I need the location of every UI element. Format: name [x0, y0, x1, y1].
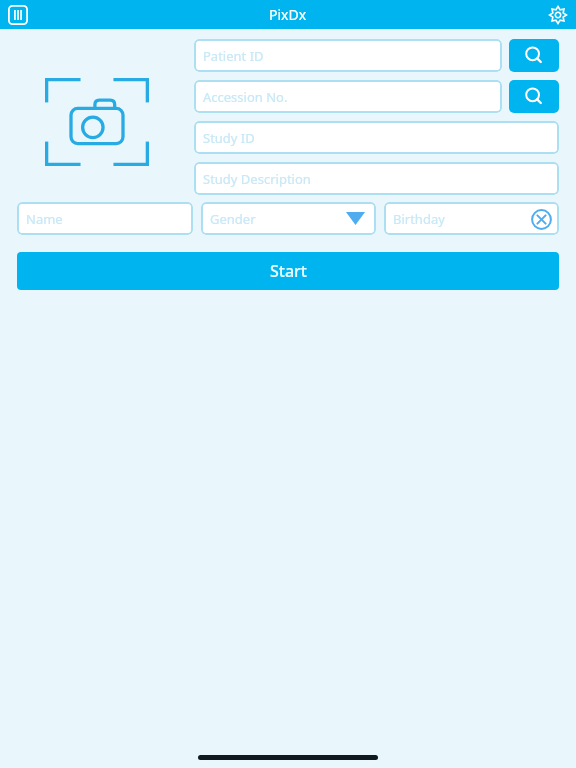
button[interactable]: Search — [509, 39, 559, 72]
button[interactable]: Study ID — [194, 121, 559, 154]
button[interactable]: Name — [17, 202, 193, 235]
staticText: Name — [26, 210, 63, 228]
staticText: Study ID — [203, 129, 255, 147]
button[interactable]: Clear birthday — [529, 207, 553, 231]
button[interactable]: Settings — [545, 2, 571, 28]
button[interactable]: Study Description — [194, 162, 559, 195]
button[interactable]: Scan barcode — [5, 2, 31, 28]
button[interactable]: Accession No. — [194, 80, 502, 113]
button[interactable]: Patient ID — [194, 39, 502, 72]
button[interactable]: Search — [509, 80, 559, 113]
button[interactable]: Gender — [201, 202, 376, 235]
button[interactable]: Scan with camera — [45, 78, 149, 166]
staticText: Accession No. — [203, 88, 288, 106]
button[interactable]: Birthday — [384, 202, 559, 235]
staticText: Start — [270, 260, 307, 282]
staticText: Birthday — [393, 210, 445, 228]
staticText: Study Description — [203, 170, 311, 188]
staticText: PixDx — [269, 5, 307, 24]
staticText: Gender — [210, 210, 256, 228]
staticText: Patient ID — [203, 47, 264, 65]
button[interactable]: Start — [17, 252, 559, 290]
